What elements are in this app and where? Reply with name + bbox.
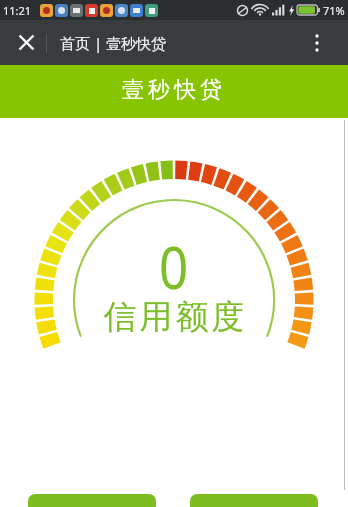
staticText: 信用额度: [102, 296, 246, 338]
button[interactable]: [190, 494, 318, 507]
staticText: 首页 | 壹秒快贷: [60, 33, 167, 53]
staticText: 壹秒快贷: [120, 76, 224, 104]
button[interactable]: [0, 20, 46, 65]
button[interactable]: [285, 20, 348, 65]
button[interactable]: [28, 494, 156, 507]
staticText: 71%: [323, 3, 345, 18]
staticText: 11:21: [3, 3, 32, 18]
staticText: 0: [159, 227, 189, 306]
